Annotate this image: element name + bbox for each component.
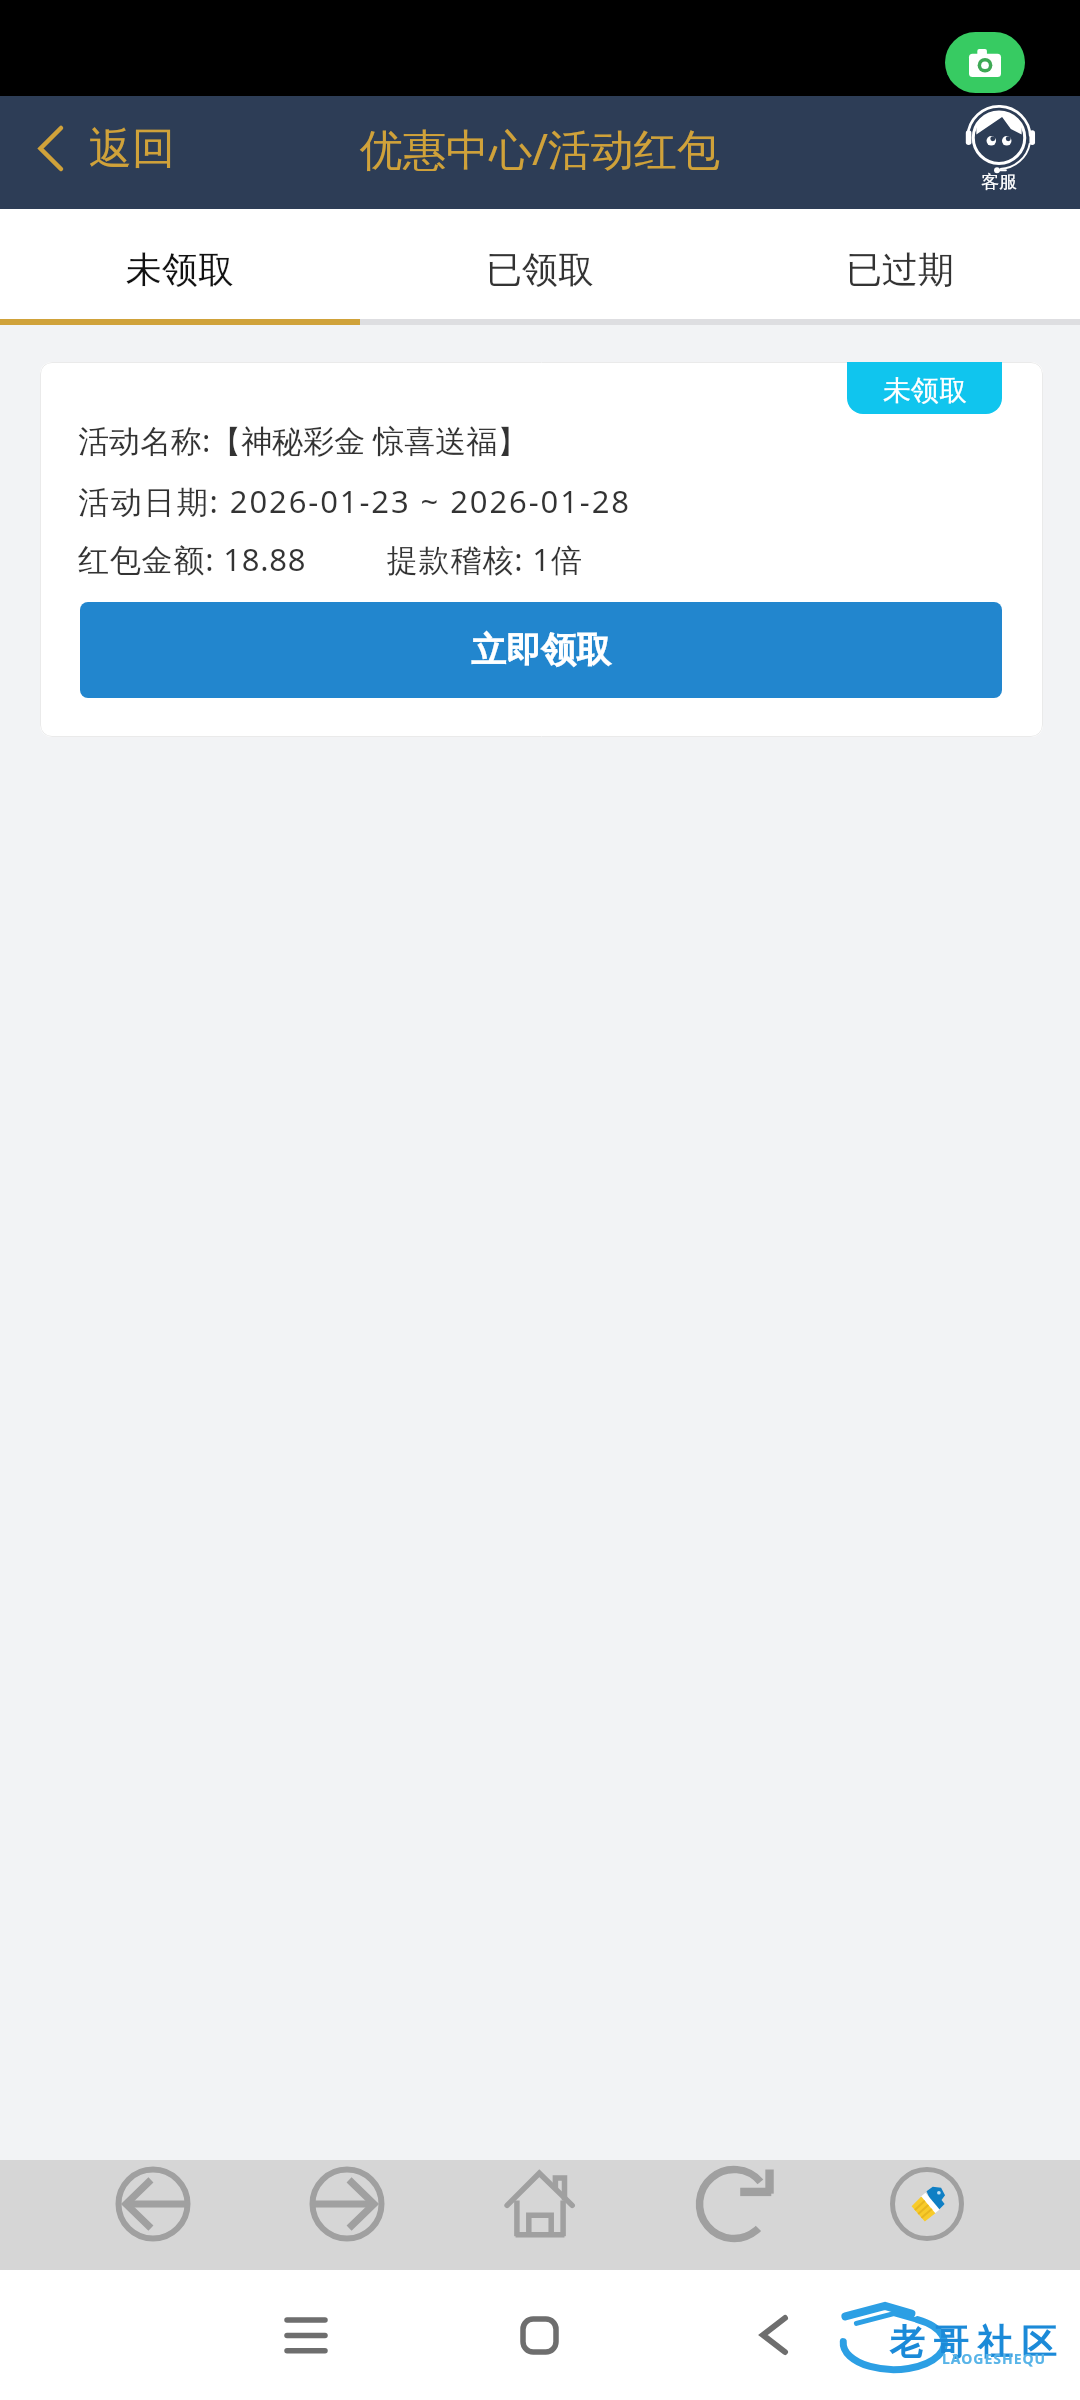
- button[interactable]: Recents: [260, 2289, 352, 2381]
- staticText: 老哥社区: [885, 2320, 1061, 2364]
- button[interactable]: 返回: [0, 114, 195, 192]
- button[interactable]: 未领取: [0, 209, 360, 319]
- button[interactable]: Clean: [883, 2160, 971, 2248]
- staticText: 客服: [981, 171, 1017, 194]
- staticText: 未领取: [126, 247, 234, 292]
- button[interactable]: Back: [109, 2160, 197, 2248]
- staticText: 活动名称:【神秘彩金 惊喜送福】: [78, 419, 529, 461]
- staticText: 优惠中心/活动红包: [360, 119, 720, 178]
- staticText: 红包金额: 18.88: [78, 538, 307, 580]
- button[interactable]: Customer service: [966, 104, 1032, 201]
- staticText: 未领取: [883, 373, 967, 408]
- staticText: 已过期: [846, 247, 954, 292]
- button[interactable]: Back: [726, 2289, 818, 2381]
- button[interactable]: 已过期: [720, 209, 1080, 319]
- button[interactable]: 立即领取: [80, 602, 1002, 698]
- button[interactable]: Refresh: [690, 2160, 778, 2248]
- button[interactable]: 已领取: [360, 209, 720, 319]
- staticText: 立即领取: [471, 628, 611, 672]
- button[interactable]: Camera: [945, 32, 1025, 93]
- button[interactable]: Forward: [303, 2160, 391, 2248]
- button[interactable]: Home: [496, 2160, 584, 2248]
- button[interactable]: Home: [493, 2289, 585, 2381]
- button[interactable]: 未领取: [847, 362, 1002, 414]
- button[interactable]: 活动名称:【神秘彩金 惊喜送福】: [40, 362, 1043, 737]
- staticText: 活动日期: 2026-01-23 ~ 2026-01-28: [78, 480, 631, 522]
- staticText: LAOGESHEQU: [942, 2349, 1047, 2368]
- staticText: 返回: [89, 122, 175, 176]
- staticText: 已领取: [486, 247, 594, 292]
- staticText: 提款稽核: 1倍: [387, 538, 583, 580]
